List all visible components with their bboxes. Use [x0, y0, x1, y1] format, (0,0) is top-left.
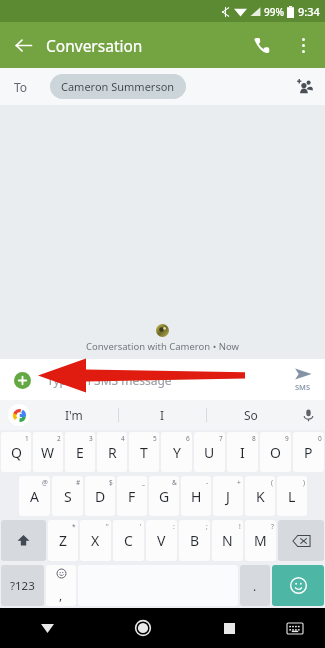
- button[interactable]: F: [117, 476, 147, 516]
- button[interactable]: Voice input: [294, 401, 322, 429]
- button[interactable]: C: [113, 520, 144, 561]
- button[interactable]: T: [129, 432, 159, 472]
- staticText: Q: [11, 443, 22, 462]
- button[interactable]: Home: [95, 608, 191, 648]
- staticText: 3: [89, 434, 93, 443]
- staticText: _: [142, 478, 145, 487]
- button[interactable]: M: [245, 520, 276, 561]
- button[interactable]: P: [293, 432, 324, 472]
- button[interactable]: B: [179, 520, 210, 561]
- button[interactable]: W: [33, 432, 63, 472]
- staticText: X: [91, 531, 100, 550]
- staticText: M: [254, 531, 267, 550]
- button[interactable]: Back: [0, 22, 46, 68]
- button[interactable]: Hide keyboard: [0, 608, 95, 648]
- button[interactable]: ?123: [1, 565, 44, 606]
- staticText: Type an SMS message: [47, 372, 172, 388]
- button[interactable]: A: [19, 476, 50, 516]
- staticText: 5: [153, 434, 157, 443]
- staticText: +: [237, 478, 241, 487]
- staticText: 2: [57, 434, 61, 443]
- staticText: @: [42, 478, 48, 487]
- staticText: S: [64, 487, 72, 506]
- button[interactable]: Q: [1, 432, 31, 472]
- button[interactable]: U: [194, 432, 225, 472]
- button[interactable]: Z: [48, 520, 78, 561]
- staticText: Y: [173, 443, 181, 462]
- button[interactable]: V: [146, 520, 177, 561]
- button[interactable]: G: [149, 476, 179, 516]
- button[interactable]: I'm: [30, 400, 118, 430]
- button[interactable]: N: [212, 520, 243, 561]
- staticText: .: [253, 578, 257, 594]
- button[interactable]: Recent apps: [191, 608, 268, 648]
- staticText: ": [106, 522, 109, 531]
- staticText: U: [204, 443, 215, 462]
- staticText: K: [256, 487, 265, 506]
- staticText: ?123: [10, 578, 35, 594]
- staticText: ,: [59, 587, 63, 603]
- button[interactable]: D: [85, 476, 115, 516]
- staticText: I: [160, 407, 165, 423]
- staticText: 0: [318, 434, 322, 443]
- staticText: Conversation: [46, 35, 143, 56]
- staticText: W: [41, 443, 55, 462]
- button[interactable]: I: [227, 432, 258, 472]
- staticText: ': [140, 522, 142, 531]
- staticText: So: [244, 407, 258, 423]
- button[interactable]: R: [97, 432, 127, 472]
- staticText: $: [109, 478, 113, 487]
- staticText: &: [172, 478, 177, 487]
- button[interactable]: Add people: [287, 69, 323, 105]
- staticText: #: [76, 478, 81, 487]
- staticText: *: [72, 522, 76, 531]
- button[interactable]: So: [207, 400, 294, 430]
- button[interactable]: L: [277, 476, 307, 516]
- staticText: N: [222, 531, 233, 550]
- staticText: ): [303, 478, 305, 487]
- staticText: ?: [271, 522, 274, 531]
- button[interactable]: .: [240, 565, 270, 606]
- staticText: ;: [206, 522, 208, 531]
- button[interactable]: K: [245, 476, 275, 516]
- staticText: Cameron Summerson: [61, 79, 175, 94]
- staticText: J: [226, 487, 230, 506]
- button[interactable]: Add attachment: [9, 367, 35, 393]
- button[interactable]: Emoji and comma: [46, 565, 76, 606]
- button[interactable]: Google: [8, 404, 30, 426]
- button[interactable]: Cameron Summerson: [50, 74, 186, 99]
- staticText: D: [95, 487, 106, 506]
- button[interactable]: X: [80, 520, 111, 561]
- button[interactable]: O: [260, 432, 291, 472]
- staticText: E: [76, 443, 84, 462]
- staticText: H: [191, 487, 202, 506]
- button[interactable]: More options: [283, 25, 323, 65]
- staticText: I: [240, 443, 245, 462]
- button[interactable]: Emoji: [272, 565, 324, 606]
- button[interactable]: Call: [239, 23, 283, 67]
- button[interactable]: Backspace: [278, 520, 324, 561]
- button[interactable]: Send SMS: [281, 359, 325, 400]
- staticText: P: [304, 443, 313, 462]
- button[interactable]: Shift: [1, 520, 46, 561]
- button[interactable]: S: [52, 476, 83, 516]
- staticText: V: [157, 531, 166, 550]
- staticText: 9:34: [298, 4, 320, 19]
- button[interactable]: E: [65, 432, 95, 472]
- button[interactable]: H: [181, 476, 211, 516]
- staticText: 8: [252, 434, 256, 443]
- button[interactable]: Switch keyboard: [268, 608, 321, 648]
- button[interactable]: J: [213, 476, 243, 516]
- staticText: 4: [121, 434, 125, 443]
- staticText: 9: [285, 434, 289, 443]
- staticText: To: [14, 79, 28, 95]
- staticText: Z: [59, 531, 68, 550]
- staticText: 99%: [264, 5, 284, 19]
- staticText: 6: [186, 434, 190, 443]
- button[interactable]: I: [119, 400, 206, 430]
- staticText: A: [30, 487, 39, 506]
- staticText: T: [140, 443, 148, 462]
- staticText: :: [173, 522, 175, 531]
- button[interactable]: Y: [161, 432, 192, 472]
